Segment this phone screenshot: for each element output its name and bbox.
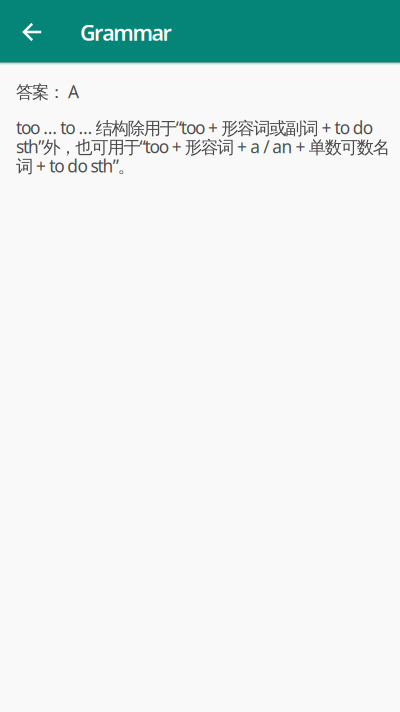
staticText: Grammar [80,18,172,47]
staticText: 答案： A [16,80,79,103]
staticText: too … to … 结构除用于“too + 形容词或副词 + to do st… [16,116,390,177]
button[interactable]: Back [10,7,54,55]
